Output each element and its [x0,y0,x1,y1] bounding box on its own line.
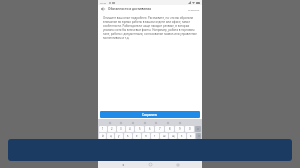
staticText: 10:47 [100,1,107,4]
staticText: ц [110,134,112,138]
button[interactable]: 2 [108,126,116,132]
button[interactable]: Подсказка [166,121,169,124]
button[interactable]: Удалить [195,126,201,132]
button[interactable]: Недавние приложения [175,162,180,167]
button[interactable]: ш [160,133,168,139]
button[interactable]: х [187,133,195,139]
button[interactable]: Подсказка [154,121,157,124]
staticText: 7 [159,127,161,131]
button[interactable]: 4 [126,126,134,132]
staticText: й [102,134,104,138]
staticText: г [154,134,156,138]
button[interactable]: Сохранить [100,111,200,118]
button[interactable]: 6 [145,126,154,132]
button[interactable]: 0 [185,126,194,132]
button[interactable]: е [133,133,141,139]
button[interactable]: Назад [100,6,106,12]
staticText: 2 [111,127,113,131]
button[interactable]: у [115,133,123,139]
button[interactable]: н [142,133,150,139]
staticText: х [190,134,192,138]
staticText: 0 [189,127,191,131]
staticText: Опишите ваш опыт подробнее. Расскажите, … [103,16,197,40]
button[interactable]: з [178,133,186,139]
button[interactable]: ц [107,133,114,139]
button[interactable]: щ [169,133,177,139]
button[interactable]: Назад [120,162,125,167]
staticText: 1 [102,127,104,131]
button[interactable]: 7 [155,126,164,132]
staticText: н [145,134,147,138]
staticText: 4 [129,127,131,131]
button[interactable]: Подсказка [131,121,134,124]
button[interactable]: 9 [175,126,184,132]
button[interactable]: 8 [165,126,174,132]
button[interactable]: к [124,133,132,139]
button[interactable]: Подсказка [178,121,181,124]
button[interactable]: Подсказка [108,121,111,124]
button[interactable]: 3 [117,126,125,132]
button[interactable]: 5 [135,126,144,132]
button[interactable]: Главный экран [148,162,153,167]
staticText: к [127,134,129,138]
button[interactable]: Подсказка [119,121,122,124]
staticText: 9 [179,127,181,131]
button[interactable]: й [99,133,106,139]
button[interactable]: Подсказка [143,121,146,124]
button[interactable]: 1 [99,126,107,132]
staticText: Очистить [188,8,200,11]
staticText: з [181,134,183,138]
button[interactable]: г [151,133,159,139]
button[interactable]: Очистить [188,8,200,11]
button[interactable]: Настройки [196,133,201,139]
staticText: 3 [120,127,122,131]
staticText: 6 [149,127,151,131]
